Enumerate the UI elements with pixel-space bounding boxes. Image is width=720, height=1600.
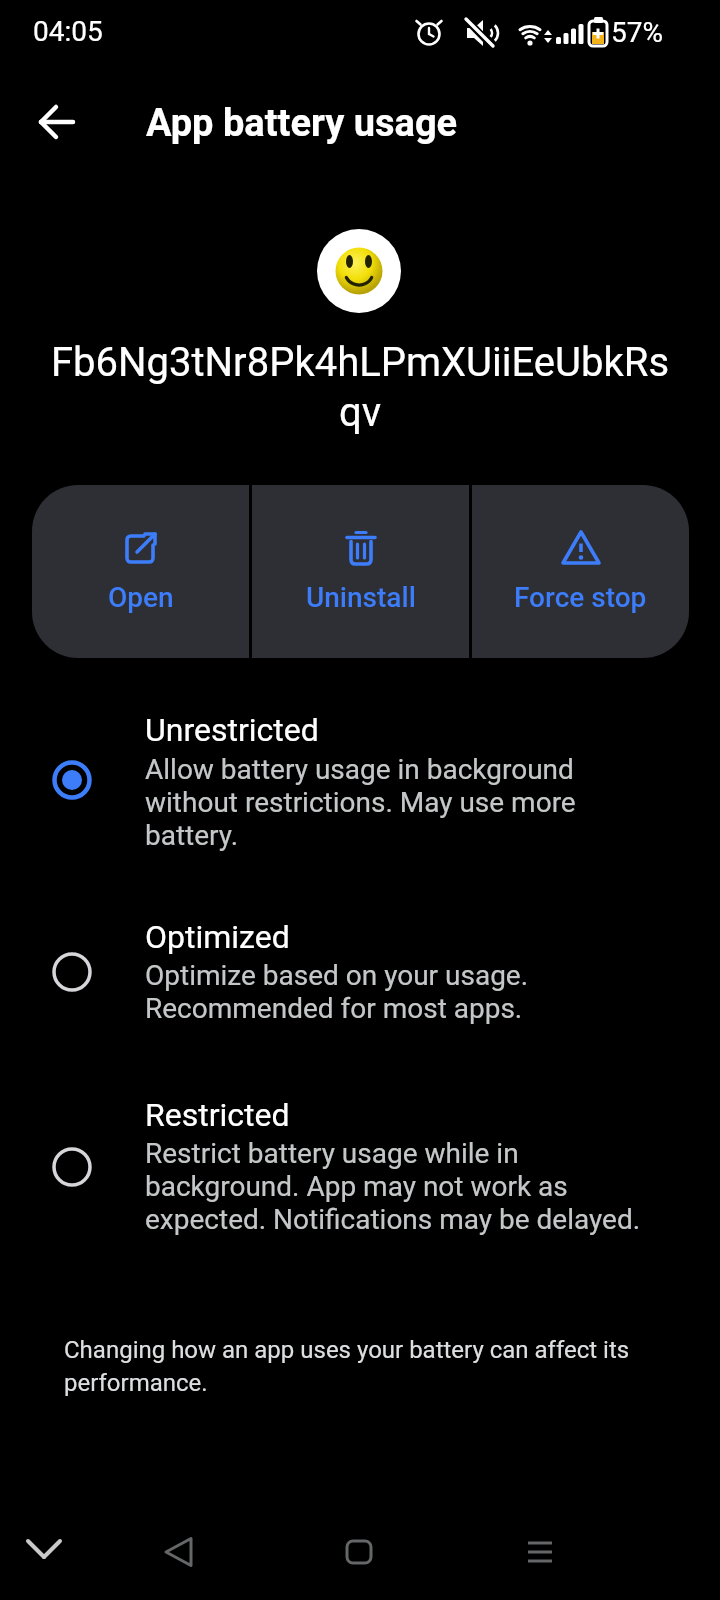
button[interactable]: Force stop: [472, 485, 689, 658]
staticText: qv: [0, 389, 720, 436]
button[interactable]: [16, 1528, 72, 1576]
staticText: Uninstall: [306, 581, 416, 614]
staticText: Fb6Ng3tNr8Pk4hLPmXUiiEeUbkRs: [0, 339, 720, 386]
button[interactable]: [0, 700, 720, 865]
button[interactable]: [152, 1528, 206, 1576]
staticText: Optimized: [145, 918, 290, 956]
button[interactable]: Open: [32, 485, 249, 658]
staticText: Restricted: [145, 1096, 290, 1134]
staticText: Optimize based on your usage. Recommende…: [145, 959, 529, 1025]
staticText: Force stop: [514, 581, 647, 614]
staticText: App battery usage: [146, 101, 458, 146]
button[interactable]: Uninstall: [252, 485, 469, 658]
staticText: Changing how an app uses your battery ca…: [64, 1336, 630, 1397]
button[interactable]: [332, 1528, 386, 1576]
button[interactable]: [0, 908, 720, 1043]
staticText: 04:05: [33, 15, 103, 48]
button[interactable]: [513, 1528, 567, 1576]
staticText: 57%: [611, 16, 663, 49]
button[interactable]: [0, 1086, 720, 1254]
button[interactable]: [30, 95, 84, 149]
staticText: Restrict battery usage while in backgrou…: [145, 1137, 641, 1236]
staticText: Unrestricted: [145, 711, 319, 749]
staticText: Open: [108, 581, 174, 614]
staticText: Allow battery usage in background withou…: [145, 753, 576, 852]
